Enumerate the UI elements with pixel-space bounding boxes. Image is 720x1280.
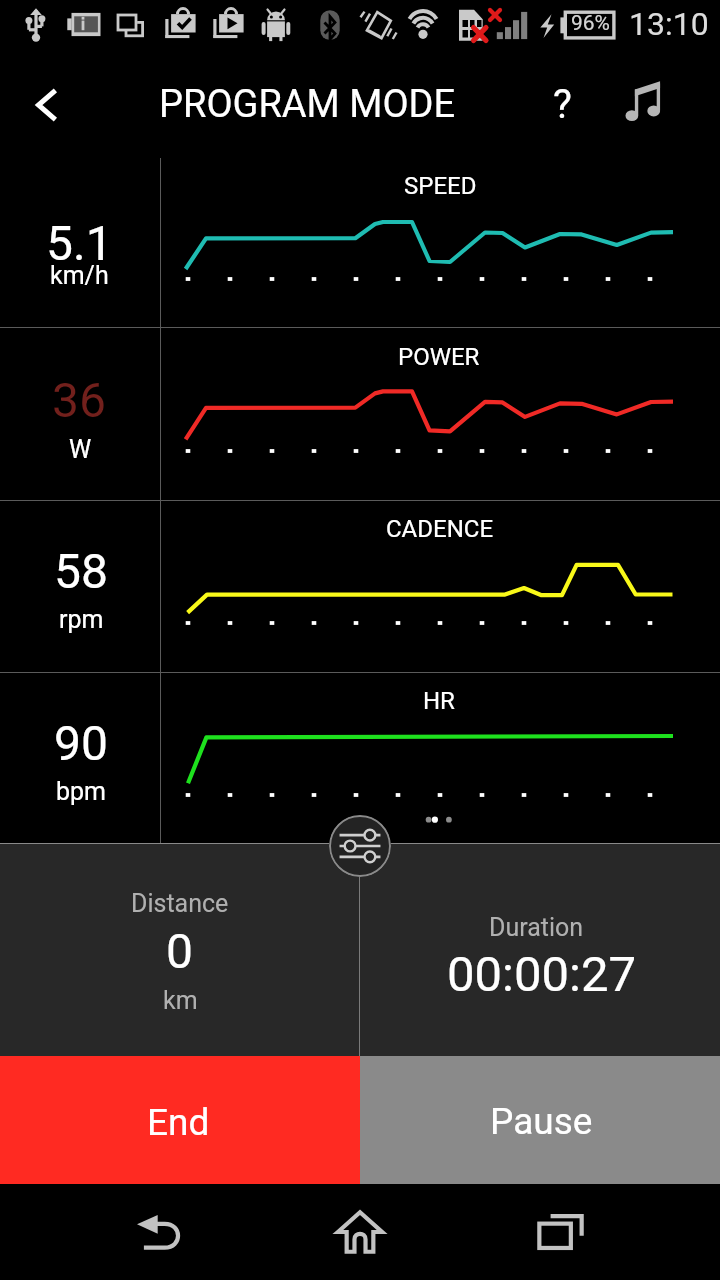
button[interactable]: Home [310, 1184, 410, 1280]
staticText: 13:10 [629, 5, 709, 43]
button[interactable]: End [0, 1056, 360, 1184]
staticText: Duration [489, 913, 584, 942]
staticText: 96% [571, 11, 610, 36]
staticText: 0 [166, 923, 193, 979]
staticText: km/h [50, 261, 109, 290]
button[interactable]: Settings [329, 815, 391, 877]
button[interactable]: Back [0, 56, 92, 154]
button[interactable]: Recent apps [510, 1184, 610, 1280]
staticText: 5.1 [46, 215, 113, 271]
staticText: rpm [59, 605, 104, 634]
button[interactable]: Pause [360, 1056, 720, 1184]
staticText: 36 [52, 372, 106, 428]
button[interactable]: Music [613, 58, 677, 152]
staticText: PROGRAM MODE [159, 82, 456, 127]
staticText: Distance [131, 889, 229, 918]
staticText: Pause [490, 1100, 593, 1143]
staticText: W [69, 435, 92, 464]
staticText: CADENCE [386, 515, 494, 543]
staticText: HR [423, 687, 455, 715]
staticText: km [163, 986, 198, 1015]
staticText: POWER [398, 343, 480, 371]
button[interactable]: Help [528, 58, 592, 152]
staticText: bpm [56, 777, 106, 806]
staticText: 00:00:27 [447, 946, 636, 1003]
staticText: SPEED [404, 172, 477, 200]
staticText: End [147, 1101, 210, 1144]
staticText: ? [553, 81, 572, 128]
staticText: 90 [54, 715, 108, 771]
staticText: 58 [54, 543, 108, 599]
button[interactable]: Back [110, 1184, 210, 1280]
